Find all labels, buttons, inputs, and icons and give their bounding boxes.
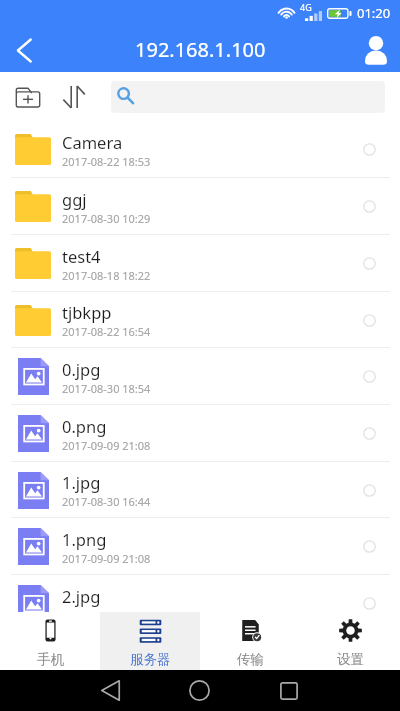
button[interactable]: Account: [352, 24, 400, 72]
staticText: test4: [62, 245, 101, 267]
staticText: 01:20: [357, 4, 391, 22]
button[interactable]: New folder: [8, 77, 48, 117]
staticText: 服务器: [130, 651, 171, 668]
staticText: 手机: [37, 651, 64, 668]
button[interactable]: Camera: [0, 121, 400, 178]
button[interactable]: 0.png: [0, 405, 400, 462]
button[interactable]: 2.jpg: [0, 575, 400, 632]
button[interactable]: ggj: [0, 178, 400, 235]
button[interactable]: 0.jpg: [0, 348, 400, 405]
staticText: 2017-08-30 16:44: [62, 494, 151, 509]
button[interactable]: tjbkpp: [0, 292, 400, 348]
button[interactable]: 设置: [300, 612, 400, 670]
button[interactable]: Search: [111, 81, 385, 113]
button[interactable]: Back: [90, 670, 131, 711]
button[interactable]: 传输: [200, 612, 300, 670]
staticText: 2017-08-30 18:54: [62, 381, 151, 396]
staticText: 2017-08-30 10:29: [62, 211, 151, 226]
staticText: ggj: [62, 188, 87, 210]
staticText: Camera: [62, 131, 123, 153]
staticText: 192.168.1.100: [135, 36, 266, 63]
button[interactable]: 手机: [0, 612, 100, 670]
button[interactable]: test4: [0, 235, 400, 292]
staticText: 2.jpg: [62, 585, 101, 607]
staticText: 2017-08-22 16:54: [62, 324, 151, 339]
staticText: 2017-08-22 18:53: [62, 154, 151, 169]
button[interactable]: 服务器: [100, 612, 200, 670]
staticText: 1.jpg: [62, 471, 101, 493]
staticText: 4G: [300, 1, 312, 13]
staticText: 2017-09-09 21:08: [62, 438, 151, 453]
staticText: 1.png: [62, 528, 107, 550]
button[interactable]: Back: [0, 24, 48, 72]
staticText: 传输: [237, 651, 264, 668]
staticText: 0.jpg: [62, 358, 101, 380]
staticText: 0.png: [62, 415, 107, 437]
button[interactable]: Recent apps: [268, 670, 309, 711]
button[interactable]: 1.png: [0, 518, 400, 575]
button[interactable]: 1.jpg: [0, 462, 400, 518]
button[interactable]: Home: [179, 670, 220, 711]
staticText: tjbkpp: [62, 301, 112, 323]
staticText: 2017-08-18 18:22: [62, 268, 151, 283]
staticText: 2017-08-30 16:44: [62, 608, 151, 623]
staticText: 设置: [337, 651, 364, 668]
button[interactable]: Sort: [53, 77, 93, 117]
staticText: 2017-09-09 21:08: [62, 551, 151, 566]
